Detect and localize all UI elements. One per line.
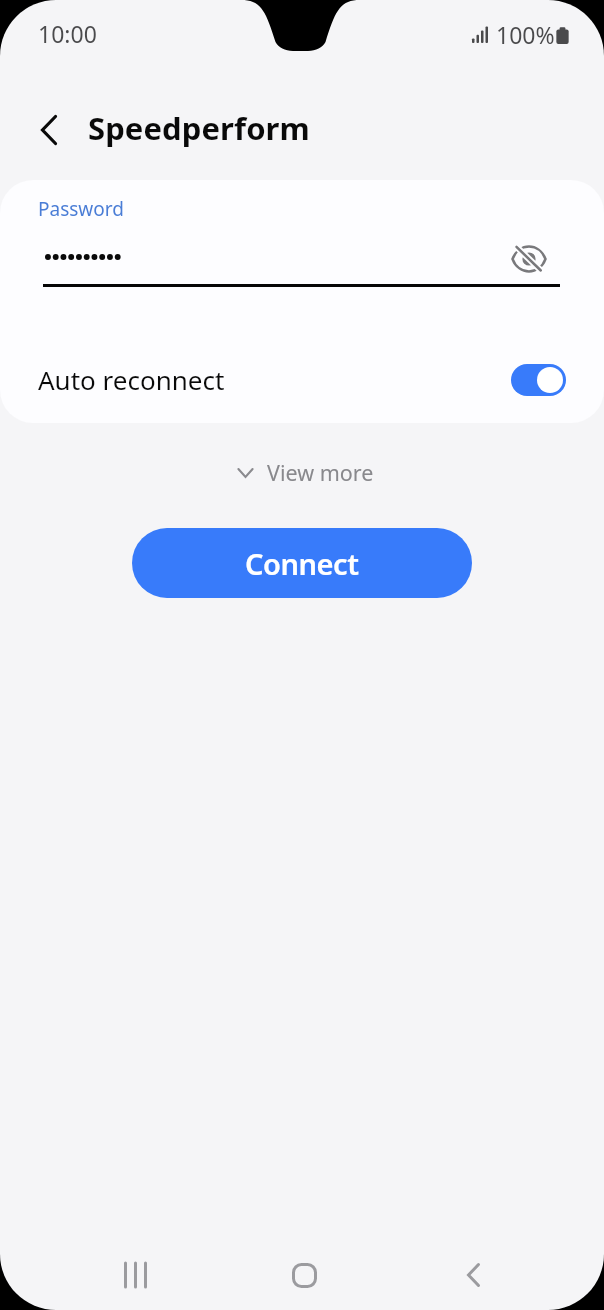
staticText: Password	[38, 196, 124, 222]
staticText: Speedperform	[88, 107, 310, 149]
button[interactable]: Connect	[132, 528, 472, 598]
button[interactable]: Recents	[105, 1245, 165, 1305]
button[interactable]: View more	[231, 452, 380, 493]
staticText: 10:00	[38, 18, 97, 49]
button[interactable]: Home	[274, 1245, 334, 1305]
button[interactable]: Auto reconnect	[511, 364, 566, 396]
staticText: Connect	[245, 544, 359, 583]
staticText: View more	[267, 458, 374, 487]
button[interactable]: Show password	[506, 236, 552, 282]
button[interactable]: Auto reconnect	[0, 347, 604, 412]
button[interactable]: Back	[443, 1245, 503, 1305]
button[interactable]: Back	[24, 105, 74, 155]
staticText: Auto reconnect	[38, 362, 225, 397]
staticText: 100%	[496, 19, 555, 50]
